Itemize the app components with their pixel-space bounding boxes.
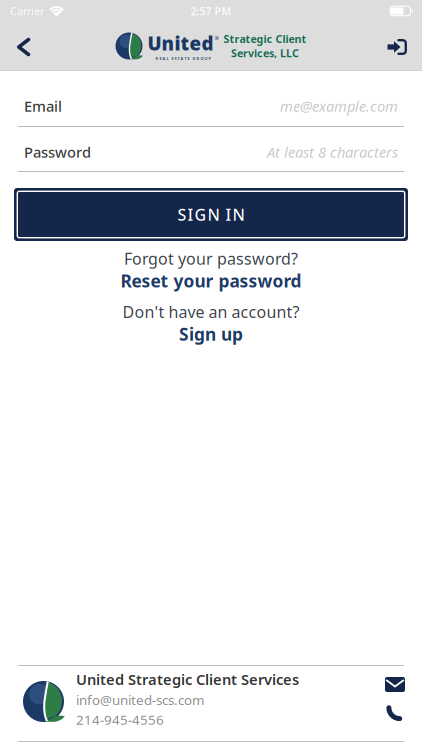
staticText: Password bbox=[24, 142, 91, 162]
staticText: Don't have an account? bbox=[122, 301, 299, 322]
button[interactable]: Sign in bbox=[387, 37, 422, 55]
staticText: Carrier bbox=[10, 4, 44, 18]
staticText: Email bbox=[24, 96, 62, 116]
staticText: SIGN IN bbox=[177, 204, 244, 225]
staticText: Services, LLC bbox=[231, 46, 299, 60]
staticText: me@example.com bbox=[280, 96, 398, 116]
staticText: Reset your password bbox=[120, 269, 301, 292]
button[interactable]: Sign up bbox=[179, 322, 243, 345]
staticText: 214-945-4556 bbox=[76, 711, 164, 728]
staticText: ® bbox=[214, 35, 218, 42]
staticText: At least 8 characters bbox=[267, 142, 398, 162]
button[interactable]: Password bbox=[0, 127, 422, 171]
staticText: 2:57 PM bbox=[190, 4, 231, 18]
button[interactable]: Email bbox=[0, 80, 422, 126]
staticText: Sign up bbox=[179, 322, 243, 345]
button[interactable]: Back bbox=[0, 36, 30, 56]
staticText: Strategic Client bbox=[223, 32, 306, 46]
staticText: R E A L E S T A T E G R O U P bbox=[155, 56, 210, 61]
button[interactable]: Call us bbox=[386, 704, 403, 721]
staticText: info@united-scs.com bbox=[76, 691, 204, 709]
staticText: Forgot your password? bbox=[124, 248, 298, 269]
button[interactable]: Reset your password bbox=[120, 269, 301, 292]
staticText: United bbox=[147, 31, 213, 56]
button[interactable]: SIGN IN bbox=[0, 188, 422, 241]
staticText: United Strategic Client Services bbox=[76, 670, 299, 689]
button[interactable]: Email us bbox=[385, 677, 405, 692]
